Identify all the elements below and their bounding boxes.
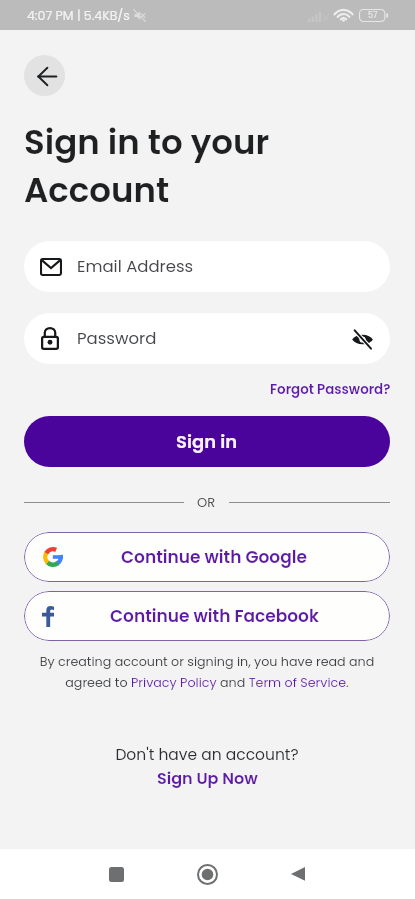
button[interactable]: Password bbox=[24, 313, 390, 364]
staticText: Email Address bbox=[77, 255, 194, 278]
staticText: Continue with Google bbox=[121, 545, 307, 569]
button[interactable]: Home bbox=[187, 849, 228, 899]
button[interactable]: Back bbox=[277, 849, 318, 899]
staticText: Password bbox=[77, 327, 349, 350]
staticText: Forgot Password? bbox=[270, 380, 391, 399]
staticText: Sign Up Now bbox=[157, 767, 258, 789]
staticText: Continue with Facebook bbox=[110, 604, 319, 628]
staticText: Sign in to your Account bbox=[24, 118, 270, 214]
button[interactable]: Recent apps bbox=[96, 849, 137, 899]
button[interactable]: Forgot Password? bbox=[250, 378, 392, 400]
button[interactable]: Show password bbox=[349, 326, 375, 352]
button[interactable]: Sign Up Now bbox=[140, 766, 275, 790]
staticText: OR bbox=[197, 493, 216, 511]
button[interactable]: Continue with Google bbox=[24, 532, 390, 582]
staticText: Don't have an account? bbox=[24, 744, 390, 766]
button[interactable]: Email Address bbox=[24, 241, 390, 292]
staticText: 57 bbox=[368, 10, 378, 21]
button[interactable]: Sign in bbox=[24, 416, 390, 467]
staticText: Sign in bbox=[176, 429, 238, 454]
staticText: By creating account or signing in, you h… bbox=[24, 653, 390, 692]
button[interactable]: Continue with Facebook bbox=[24, 591, 390, 641]
button[interactable]: Back bbox=[24, 55, 65, 96]
staticText: 4:07 PM | 5.4KB/s bbox=[27, 7, 130, 24]
